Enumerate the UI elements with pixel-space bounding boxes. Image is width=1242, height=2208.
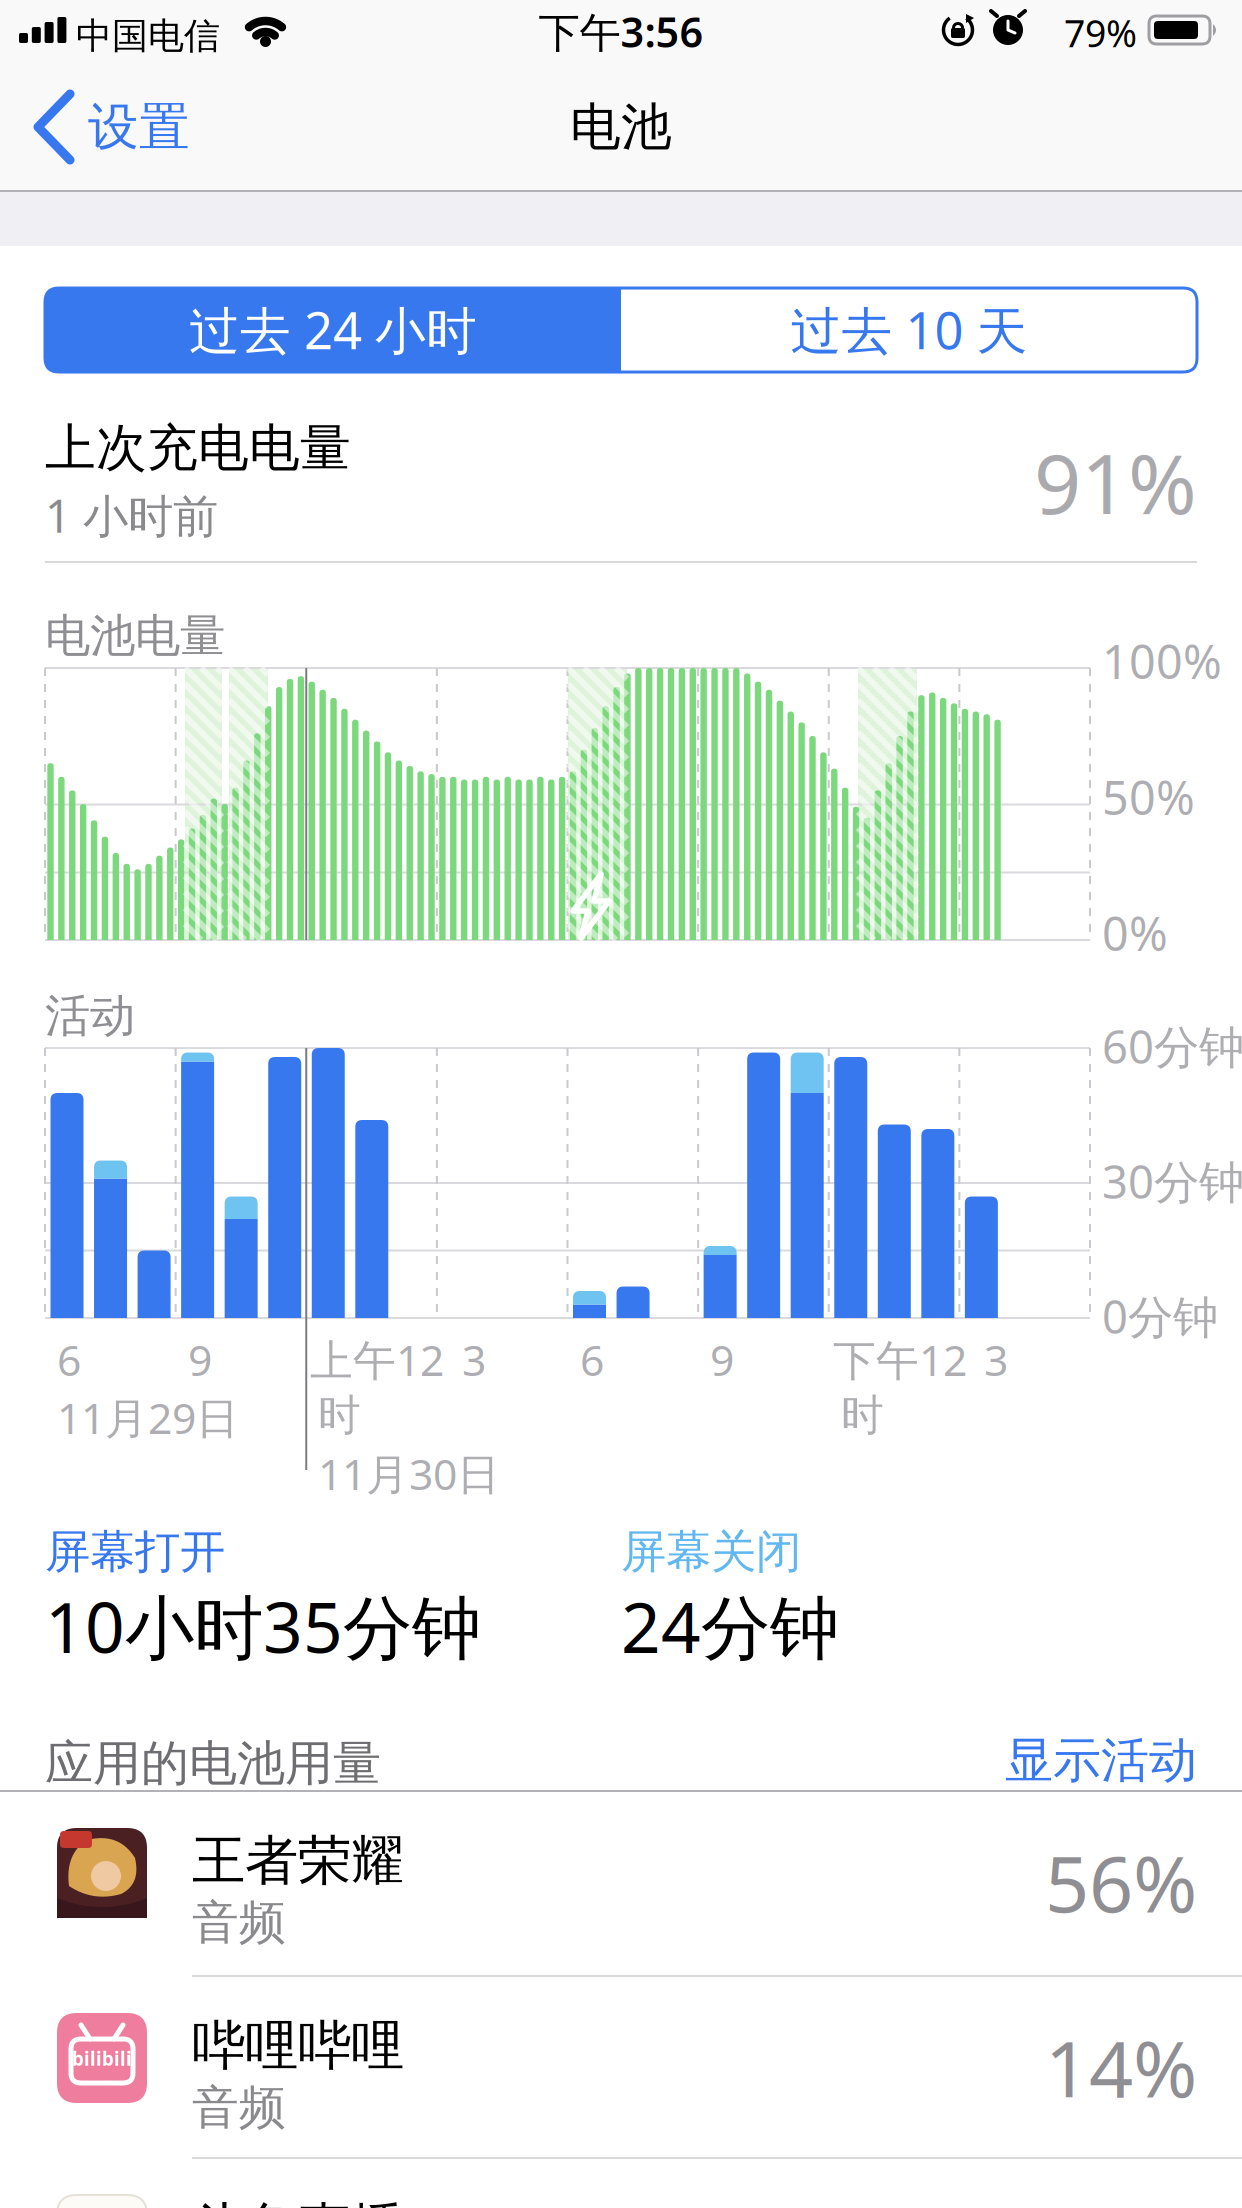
staticText: 屏幕关闭 xyxy=(621,1524,801,1580)
staticText: 10小时35分钟 xyxy=(45,1580,481,1672)
staticText: 下午3:56 xyxy=(538,4,703,59)
staticText: 0分钟 xyxy=(1102,1286,1218,1346)
button[interactable]: 过去 24 小时 xyxy=(45,288,621,372)
staticText: 哔哩哔哩 xyxy=(192,2013,404,2078)
staticText: 电池电量 xyxy=(45,608,225,664)
staticText: 79% xyxy=(1064,8,1137,58)
staticText: 1 小时前 xyxy=(45,485,218,545)
staticText: 电池 xyxy=(570,96,672,158)
staticText: 14% xyxy=(1045,2016,1197,2119)
staticText: 6 xyxy=(580,1331,604,1388)
button[interactable]: 王者荣耀 xyxy=(0,1790,1242,1974)
button[interactable]: 斗鱼直播 xyxy=(0,2157,1242,2208)
button[interactable]: 过去 10 天 xyxy=(621,288,1197,372)
staticText: 时 xyxy=(318,1389,361,1441)
staticText: 3 xyxy=(462,1331,486,1388)
staticText: 9 xyxy=(188,1331,212,1388)
staticText: 56% xyxy=(1045,1831,1197,1934)
staticText: 应用的电池用量 xyxy=(45,1734,381,1793)
staticText: 上次充电电量 xyxy=(45,417,351,479)
staticText: 音频 xyxy=(192,2079,286,2136)
staticText: 0% xyxy=(1102,902,1168,964)
staticText: 下午12 xyxy=(833,1331,967,1388)
staticText: 9 xyxy=(710,1331,734,1388)
staticText: 王者荣耀 xyxy=(192,1828,404,1893)
staticText: 斗鱼直播 xyxy=(192,2195,404,2208)
staticText: 中国电信 xyxy=(76,14,220,58)
staticText: 上午12 xyxy=(310,1331,444,1388)
staticText: 6 xyxy=(57,1331,81,1388)
button[interactable]: bilibili xyxy=(0,1975,1242,2159)
staticText: 11月29日 xyxy=(57,1389,239,1446)
button[interactable]: 设置 xyxy=(0,0,240,126)
staticText: 11月30日 xyxy=(318,1445,500,1502)
staticText: 时 xyxy=(841,1389,884,1441)
staticText: 100% xyxy=(1102,630,1222,692)
staticText: 屏幕打开 xyxy=(45,1524,225,1580)
staticText: 过去 10 天 xyxy=(790,296,1027,363)
staticText: 过去 24 小时 xyxy=(189,296,477,363)
staticText: 3 xyxy=(984,1331,1008,1388)
staticText: 显示活动 xyxy=(1005,1731,1197,1790)
staticText: 91% xyxy=(1034,427,1197,537)
staticText: 活动 xyxy=(45,988,135,1044)
staticText: 24分钟 xyxy=(621,1580,839,1672)
staticText: bilibili xyxy=(72,2046,132,2071)
staticText: 50% xyxy=(1102,766,1195,828)
button[interactable]: 显示活动 xyxy=(897,1731,1197,1795)
staticText: 设置 xyxy=(88,96,190,158)
staticText: 音频 xyxy=(192,1894,286,1951)
staticText: 60分钟 xyxy=(1102,1016,1242,1076)
staticText: 30分钟 xyxy=(1102,1151,1242,1211)
